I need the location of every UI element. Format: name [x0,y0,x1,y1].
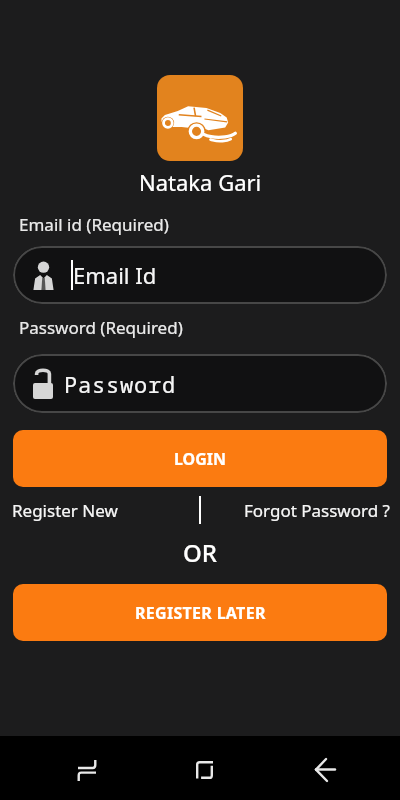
staticText: LOGIN [174,448,227,470]
button[interactable]: Password [13,354,387,413]
button[interactable] [63,742,111,798]
button[interactable]: LOGIN [13,430,387,487]
button[interactable] [180,742,228,798]
button[interactable]: Email Id [13,246,387,304]
staticText: Nataka Gari [139,167,262,197]
staticText: Email id (Required) [19,213,169,236]
button[interactable]: Register New [12,499,118,522]
staticText: Password [64,369,177,399]
button[interactable] [301,742,349,798]
staticText: Email Id [73,260,157,290]
staticText: OR [183,536,217,569]
staticText: Password (Required) [19,316,183,339]
button[interactable]: REGISTER LATER [13,584,387,641]
staticText: REGISTER LATER [135,602,266,624]
button[interactable]: Forgot Password ? [244,499,390,522]
